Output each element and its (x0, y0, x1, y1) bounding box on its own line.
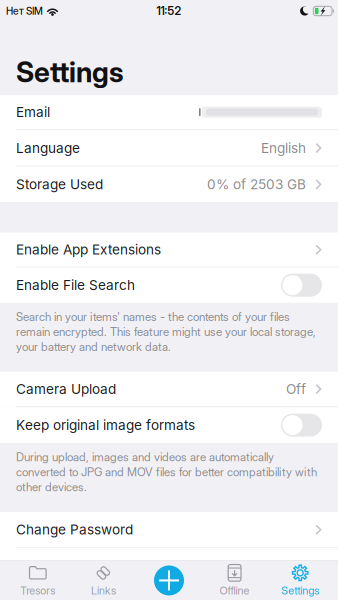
button[interactable]: Links (71, 561, 136, 600)
staticText: 11:52 (156, 4, 181, 18)
staticText: Enable File Search (16, 277, 135, 293)
staticText: Enable App Extensions (16, 241, 161, 258)
button[interactable]: Keep original image formats (0, 407, 338, 443)
button[interactable]: Enable App Extensions (0, 233, 338, 268)
staticText: Email (16, 104, 50, 120)
staticText: Offline (220, 584, 250, 597)
button[interactable]: Add (136, 561, 202, 600)
button[interactable]: Email (0, 95, 338, 130)
button[interactable]: Language (0, 130, 338, 167)
staticText: English (261, 140, 306, 156)
staticText: Language (16, 140, 80, 156)
staticText: 0% of 2503 GB (207, 176, 306, 193)
button[interactable]: Tresors (5, 561, 71, 600)
button[interactable]: Storage Used (0, 167, 338, 202)
button[interactable]: Change Password (0, 512, 338, 548)
staticText: Settings (281, 584, 319, 597)
button[interactable]: Offline (202, 561, 267, 600)
staticText: Storage Used (16, 176, 103, 193)
staticText: Change Password (16, 521, 133, 538)
staticText: Off (286, 381, 306, 397)
staticText: Camera Upload (16, 381, 116, 397)
button[interactable]: Settings (267, 561, 333, 600)
staticText: Settings (16, 55, 124, 89)
staticText: During upload, images and videos are aut… (16, 450, 317, 494)
staticText: Search in your items' names - the conten… (16, 310, 316, 354)
button[interactable]: Camera Upload (0, 372, 338, 407)
staticText: Keep original image formats (16, 417, 195, 433)
staticText: Нет SIM (6, 5, 43, 17)
staticText: Tresors (20, 584, 55, 597)
staticText: Links (91, 584, 116, 597)
button[interactable]: Enable File Search (0, 268, 338, 303)
